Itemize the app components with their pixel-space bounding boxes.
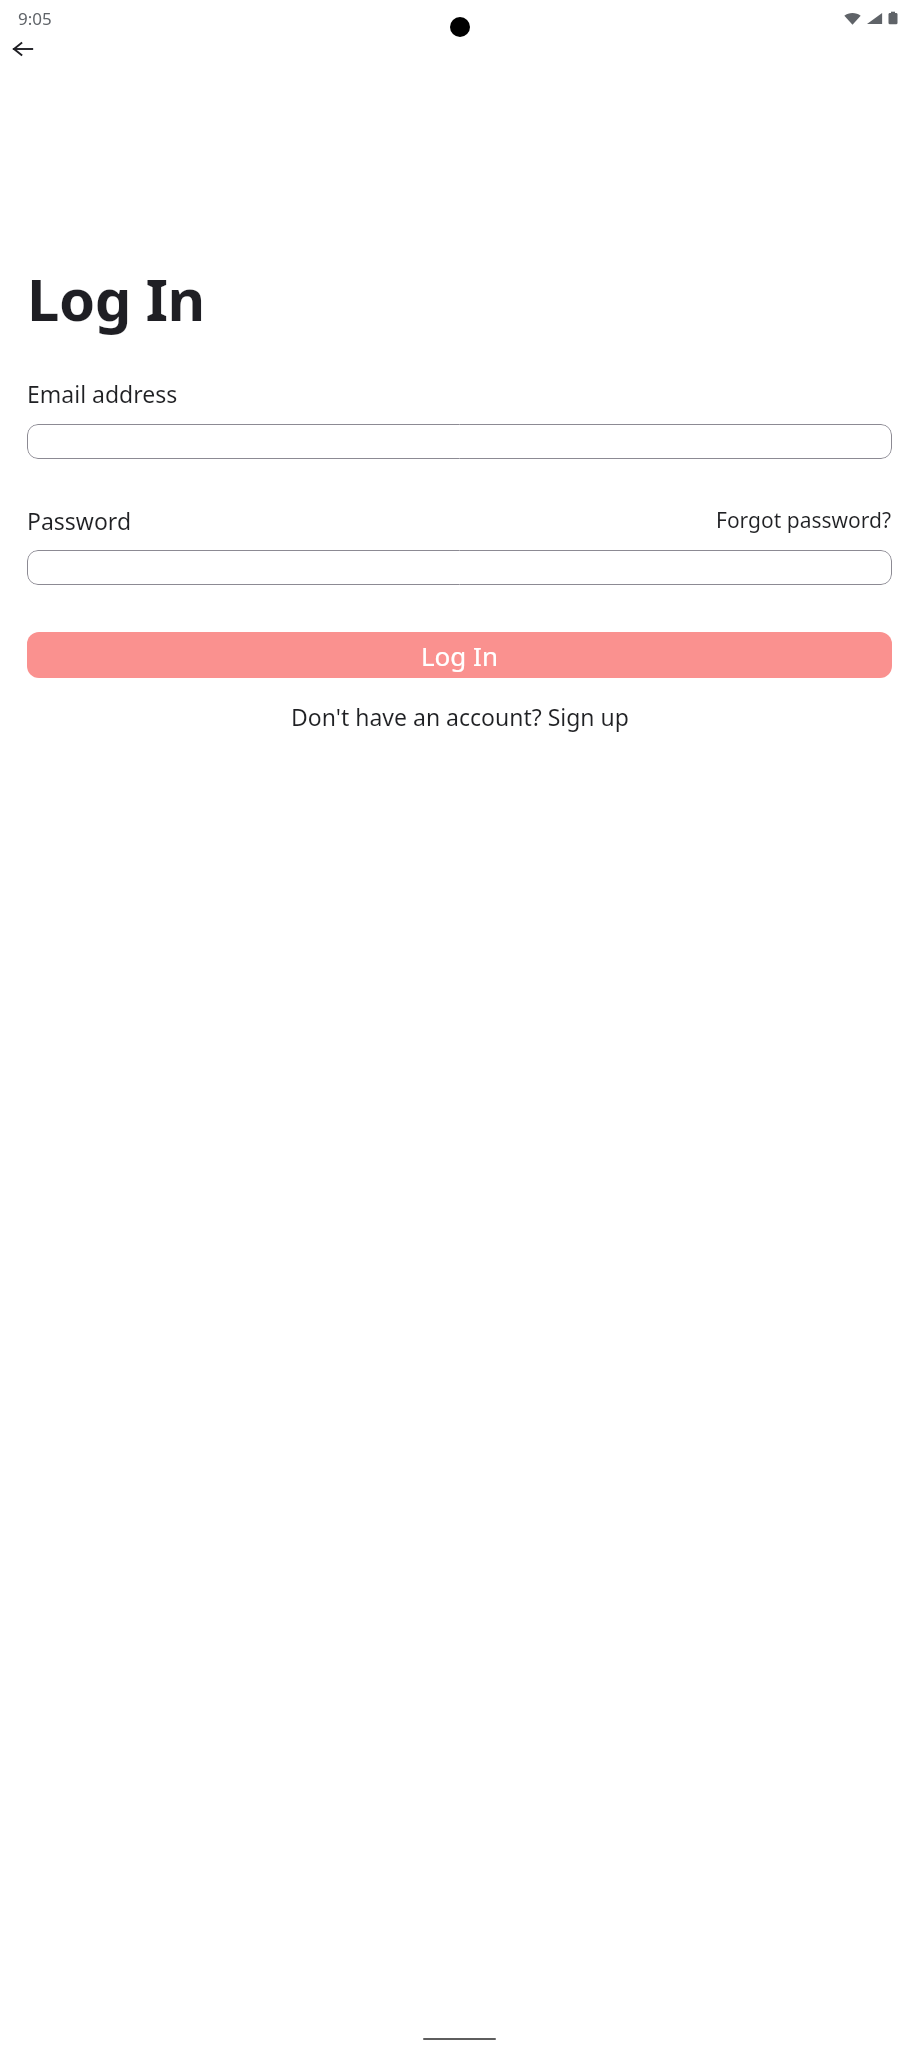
button[interactable] [27,424,892,459]
staticText: 9:05 [18,7,52,30]
staticText: Log In [421,638,498,673]
staticText: Don't have an account? Sign up [291,701,629,732]
button[interactable]: Don't have an account? Sign up [27,701,892,732]
staticText: Email address [27,378,178,409]
staticText: Forgot password? [716,506,892,535]
staticText: Log In [27,259,205,338]
staticText: Password [27,505,132,536]
button[interactable]: Back [6,32,40,66]
button[interactable]: Forgot password? [716,506,892,535]
button[interactable] [27,550,892,585]
button[interactable]: Log In [27,632,892,678]
